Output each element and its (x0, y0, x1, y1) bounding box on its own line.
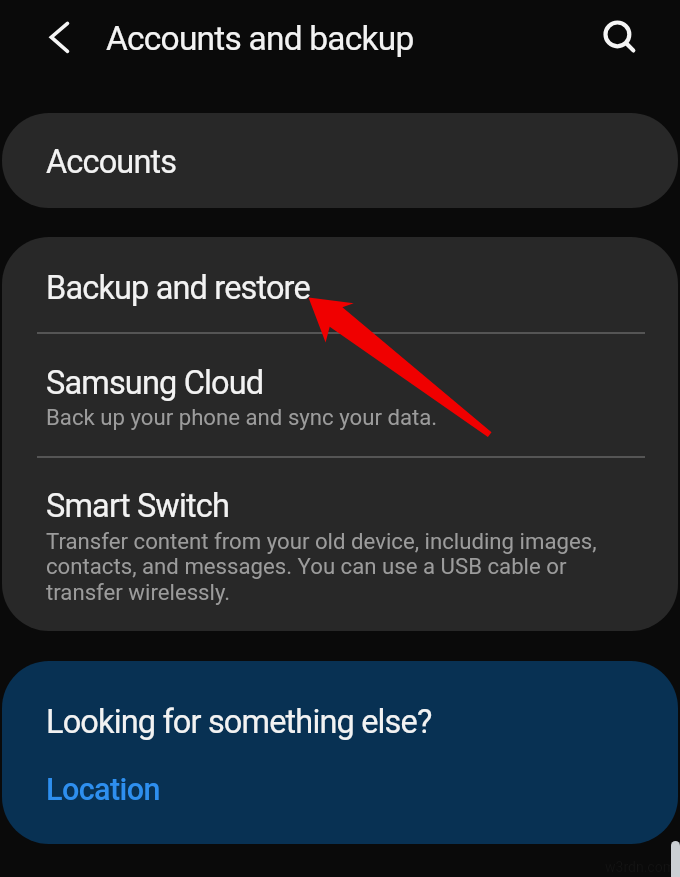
staticText: Location (46, 772, 160, 808)
button[interactable]: Accounts (2, 113, 678, 208)
staticText: Backup and restore (46, 269, 310, 307)
button[interactable]: Navigate up (34, 12, 84, 62)
button[interactable]: Location (46, 772, 160, 808)
staticText: Accounts and backup (106, 19, 414, 58)
staticText: Transfer content from your old device, i… (46, 528, 608, 606)
staticText: Accounts (46, 143, 177, 181)
staticText: Looking for something else? (46, 703, 432, 741)
button[interactable]: Search (594, 11, 642, 59)
staticText: Back up your phone and sync your data. (46, 404, 438, 430)
button[interactable]: Smart Switch (2, 458, 678, 631)
button[interactable]: Backup and restore (2, 237, 678, 332)
staticText: Samsung Cloud (46, 364, 264, 402)
button[interactable]: Samsung Cloud (2, 334, 678, 456)
staticText: w3rdn.com (605, 859, 675, 875)
staticText: Smart Switch (46, 487, 229, 525)
